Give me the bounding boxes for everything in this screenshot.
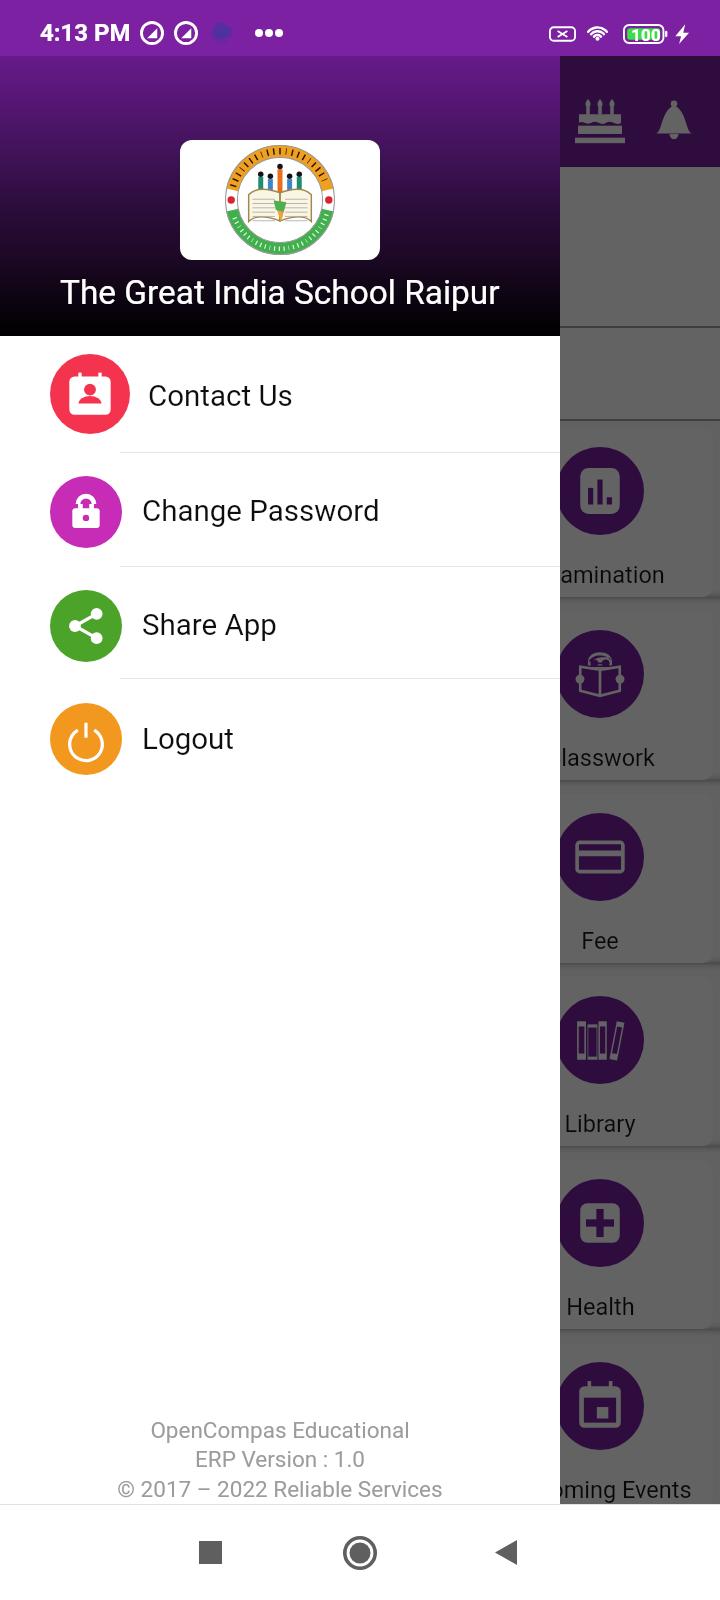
button[interactable]: Homework bbox=[7, 611, 233, 780]
staticText: ERP Version : 1.0 bbox=[0, 1446, 560, 1472]
staticText: The Great India School Raipur bbox=[60, 273, 500, 312]
staticText: Share App bbox=[142, 608, 277, 643]
button[interactable]: Close navigation drawer bbox=[0, 0, 720, 1600]
staticText: Health bbox=[566, 1293, 635, 1321]
button[interactable]: Upcoming Events bbox=[487, 1343, 713, 1512]
button[interactable]: Share App bbox=[0, 567, 560, 678]
staticText: OpenCompas Educational bbox=[0, 1417, 560, 1443]
staticText: Library bbox=[564, 1110, 636, 1138]
button[interactable]: Classwork bbox=[487, 611, 713, 780]
button[interactable]: Fee bbox=[487, 794, 713, 963]
button[interactable]: Notifications bbox=[629, 77, 719, 167]
button[interactable]: Holidays bbox=[7, 1343, 233, 1512]
button[interactable]: Birthdays bbox=[555, 77, 645, 167]
staticText: Classwork bbox=[546, 744, 655, 772]
staticText: Dashboard bbox=[124, 94, 286, 133]
button[interactable]: Health bbox=[487, 1160, 713, 1329]
button[interactable]: Change Password bbox=[0, 453, 560, 566]
button[interactable]: Open navigation menu bbox=[32, 77, 102, 147]
button[interactable]: Attendance bbox=[7, 428, 233, 597]
button[interactable]: Recents bbox=[150, 1505, 270, 1600]
button[interactable]: Back bbox=[446, 1505, 566, 1600]
staticText: Holidays bbox=[75, 1476, 166, 1504]
button[interactable]: Syllabus bbox=[247, 611, 473, 780]
staticText: Change Password bbox=[142, 494, 380, 529]
staticText: Attendance bbox=[60, 561, 180, 589]
staticText: Timetable bbox=[308, 561, 413, 589]
staticText: Teachers bbox=[312, 1476, 408, 1504]
staticText: © 2017 – 2022 Reliable Services bbox=[0, 1476, 560, 1502]
staticText: Homework bbox=[63, 744, 178, 772]
staticText: Contact Us bbox=[148, 379, 293, 414]
staticText: 100 bbox=[629, 25, 663, 45]
staticText: Fee bbox=[581, 927, 619, 955]
button[interactable]: Teachers bbox=[247, 1343, 473, 1512]
staticText: Upcoming Events bbox=[509, 1476, 692, 1504]
button[interactable]: Examination bbox=[487, 428, 713, 597]
button[interactable]: Library bbox=[487, 977, 713, 1146]
staticText: 4:13 PM bbox=[40, 19, 131, 47]
staticText: Logout bbox=[142, 722, 235, 757]
button[interactable]: Logout bbox=[0, 679, 560, 795]
button[interactable]: Contact Us bbox=[0, 336, 560, 452]
button[interactable]: Home bbox=[300, 1505, 420, 1600]
staticText: Examination bbox=[535, 561, 665, 589]
button[interactable]: Timetable bbox=[247, 428, 473, 597]
